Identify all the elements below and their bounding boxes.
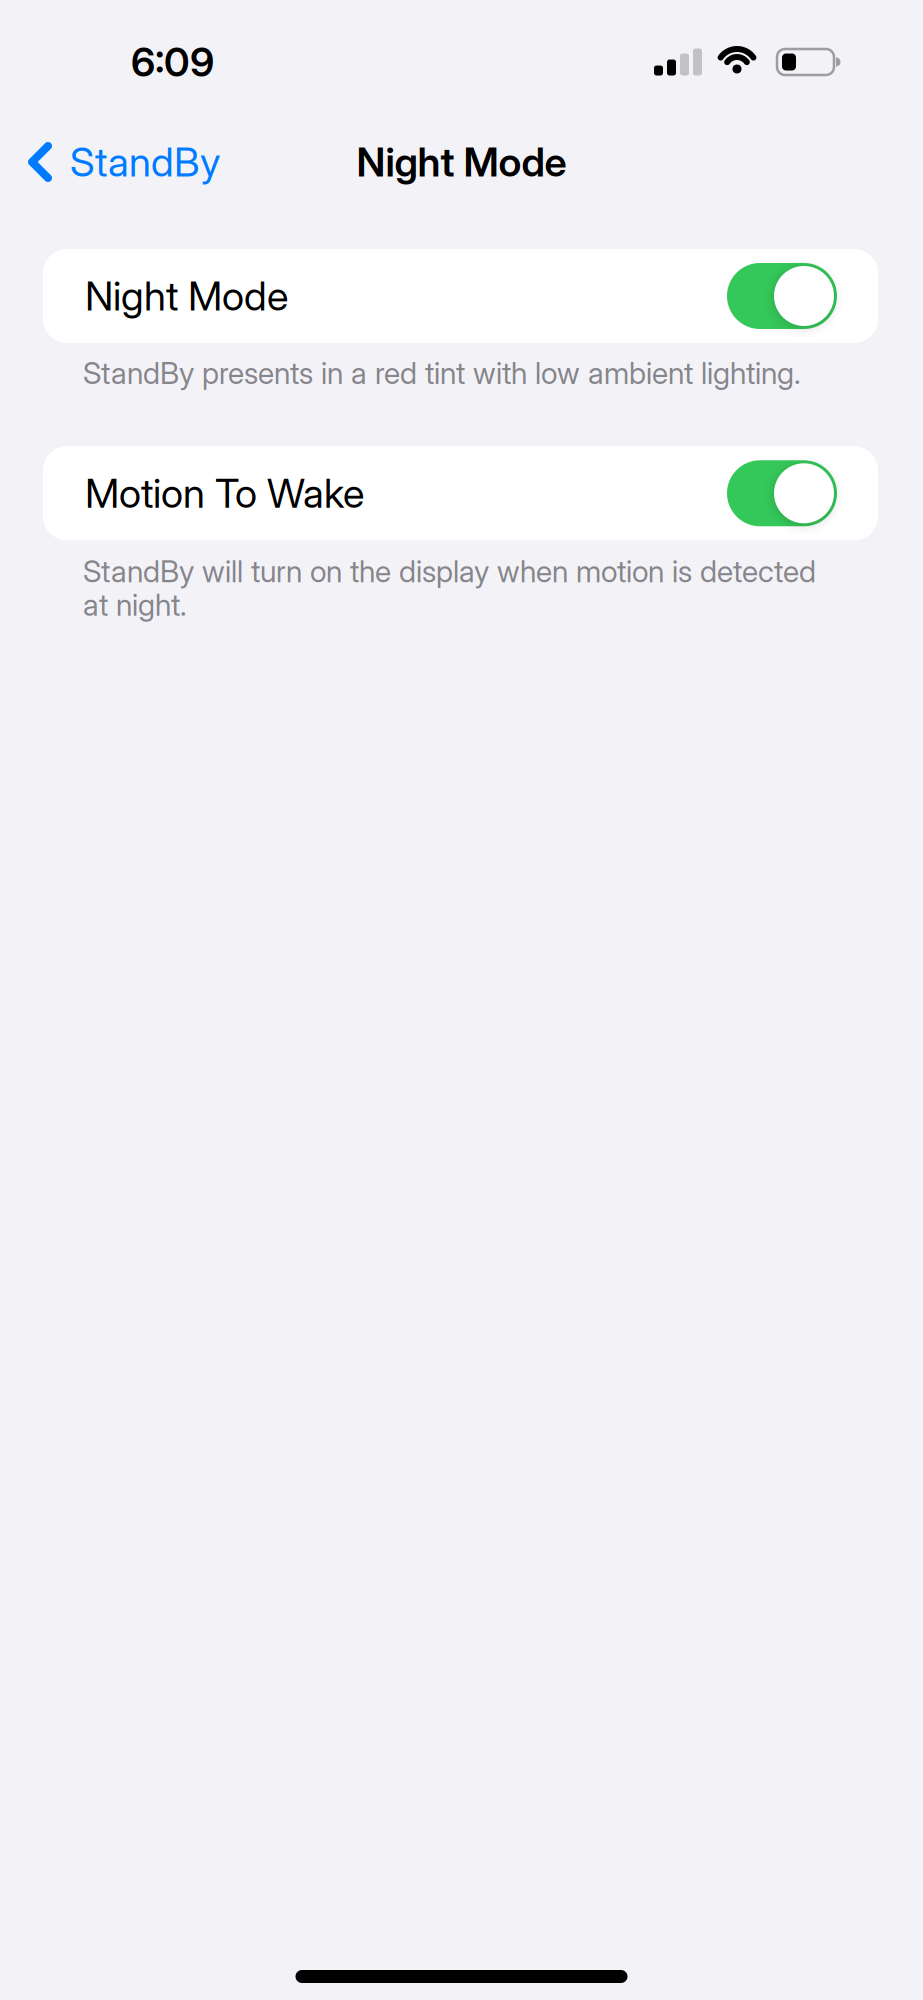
staticText: StandBy presents in a red tint with low … xyxy=(83,355,801,391)
staticText: Motion To Wake xyxy=(85,469,364,517)
staticText: at night. xyxy=(83,587,187,623)
staticText: StandBy xyxy=(70,138,220,186)
staticText: Night Mode xyxy=(85,272,288,320)
button[interactable]: StandBy xyxy=(0,138,220,186)
staticText: Night Mode xyxy=(356,138,566,186)
button[interactable]: Night Mode xyxy=(727,263,837,329)
staticText: 6:09 xyxy=(131,38,214,86)
button[interactable]: Motion To Wake xyxy=(727,460,837,526)
staticText: StandBy will turn on the display when mo… xyxy=(83,553,816,590)
